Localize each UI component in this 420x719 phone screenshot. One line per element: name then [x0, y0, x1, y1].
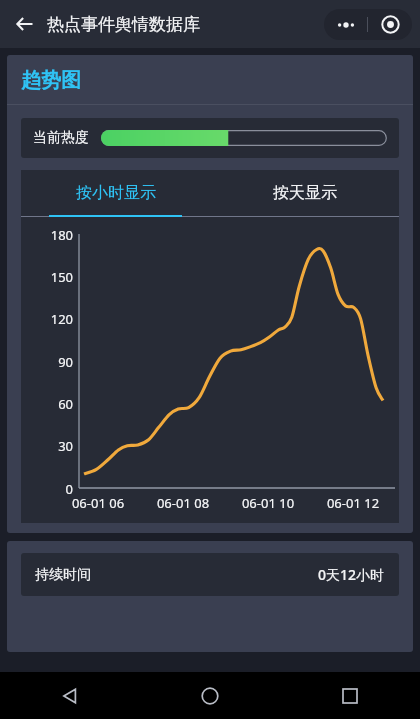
- staticText: 06-01 10: [233, 494, 303, 512]
- staticText: 30: [21, 437, 73, 455]
- staticText: 趋势图: [21, 68, 81, 93]
- button[interactable]: Home: [140, 672, 280, 719]
- staticText: 按天显示: [273, 183, 337, 203]
- button[interactable]: Back: [0, 672, 140, 719]
- button[interactable]: More options: [324, 9, 412, 40]
- staticText: 持续时间: [35, 566, 91, 584]
- button[interactable]: 当前热度: [21, 118, 399, 158]
- staticText: 0: [21, 480, 73, 498]
- staticText: 06-01 08: [148, 494, 218, 512]
- button[interactable]: 持续时间: [21, 553, 399, 596]
- staticText: 06-01 12: [318, 494, 388, 512]
- button[interactable]: 按小时显示: [21, 170, 210, 215]
- staticText: 90: [21, 353, 73, 371]
- staticText: 当前热度: [33, 129, 89, 147]
- staticText: 180: [21, 226, 73, 244]
- staticText: 热点事件舆情数据库: [47, 14, 200, 35]
- button[interactable]: 按天显示: [210, 170, 399, 215]
- staticText: 120: [21, 310, 73, 328]
- button[interactable]: Recents: [280, 672, 420, 719]
- staticText: 60: [21, 395, 73, 413]
- staticText: 06-01 06: [63, 494, 133, 512]
- staticText: 按小时显示: [76, 183, 156, 203]
- staticText: 150: [21, 268, 73, 286]
- button[interactable]: Back: [8, 7, 42, 41]
- staticText: 0天12小时: [318, 565, 385, 584]
